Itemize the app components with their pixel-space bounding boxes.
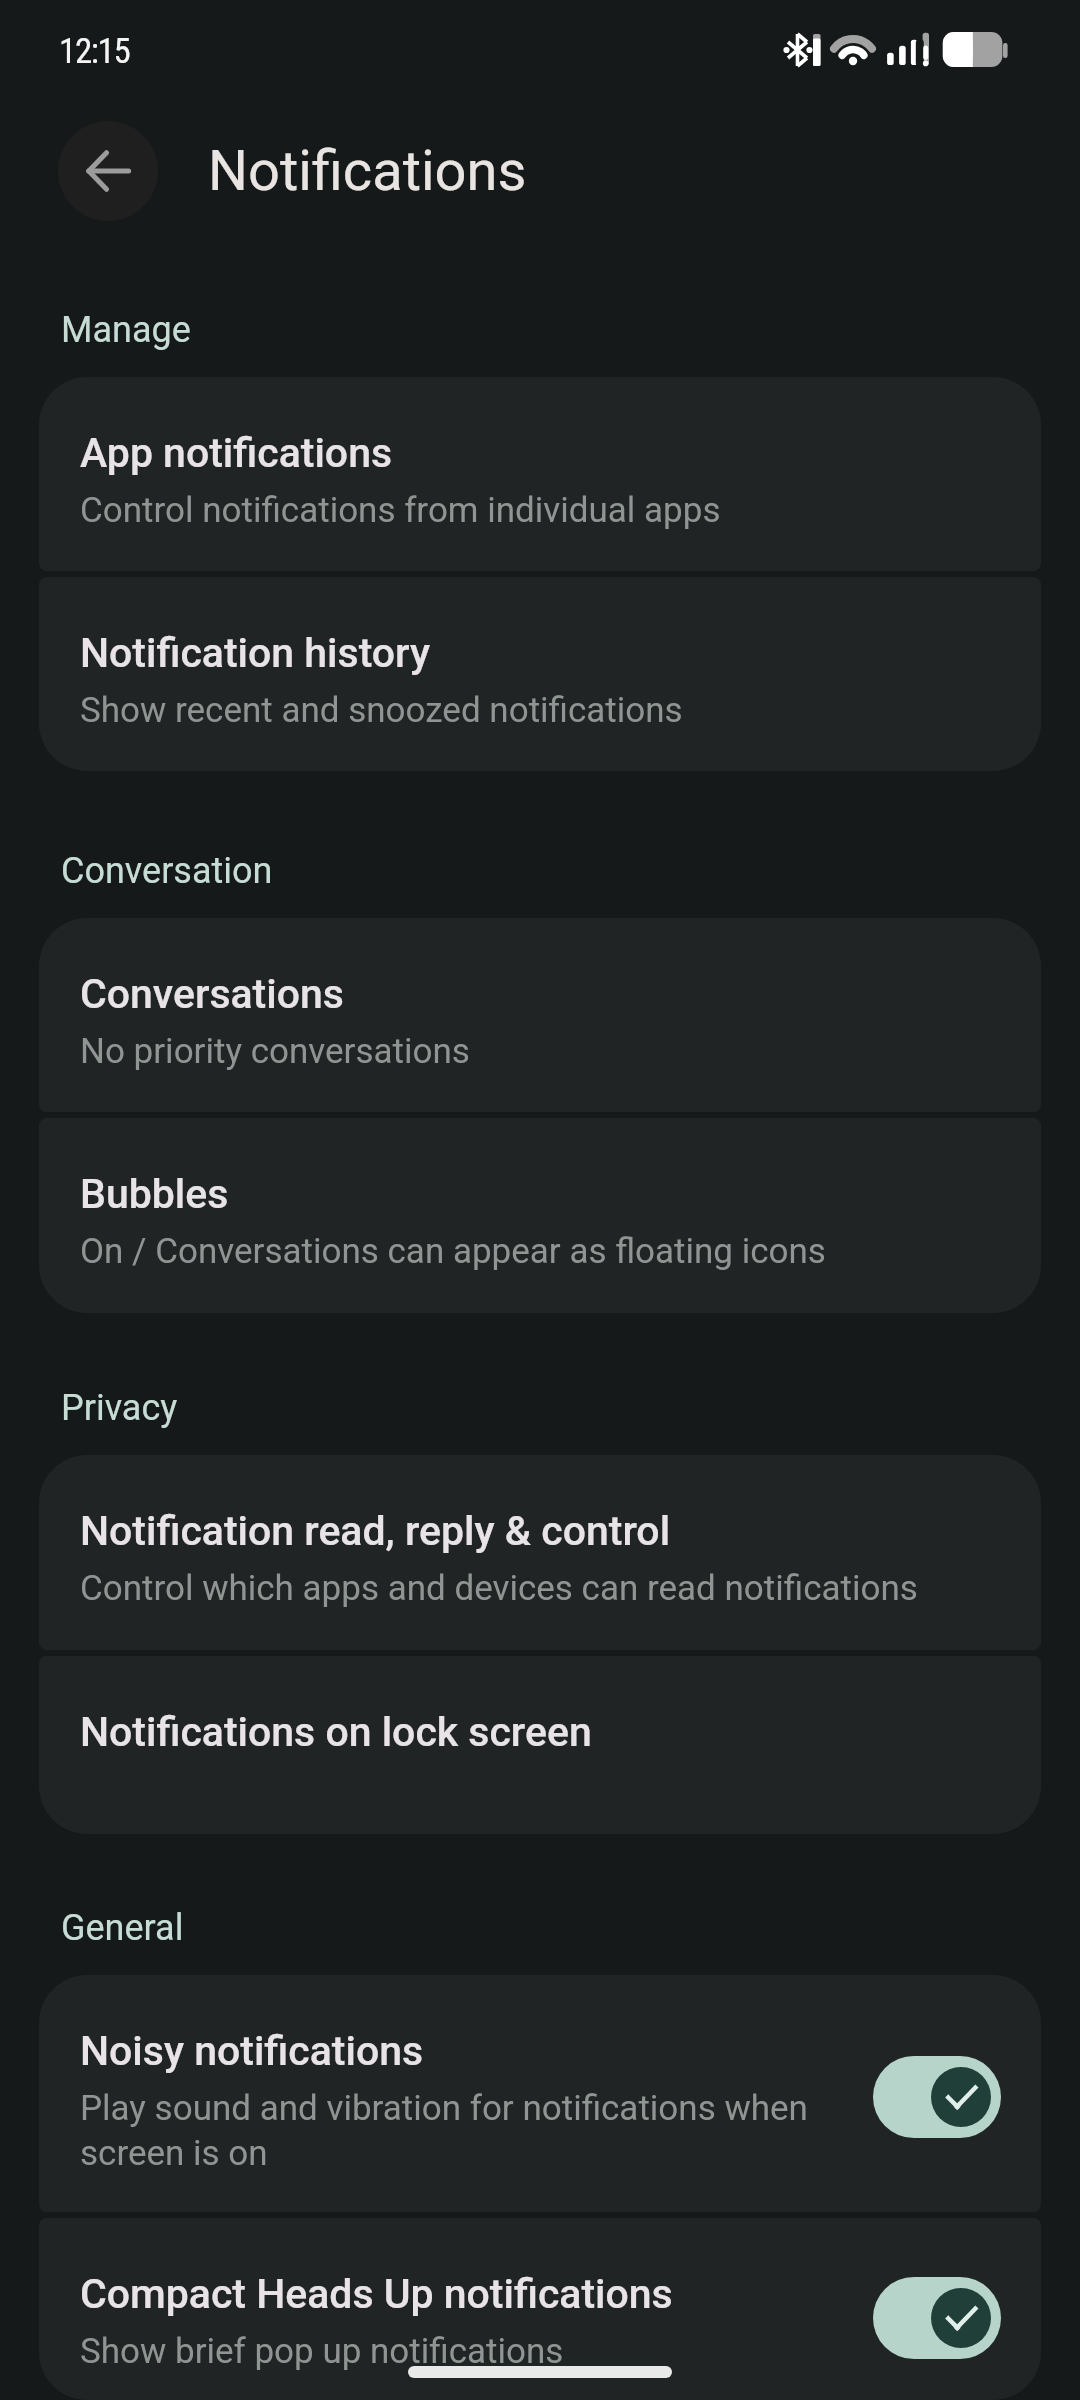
- staticText: Control notifications from individual ap…: [80, 490, 721, 531]
- staticText: Show brief pop up notifications: [80, 2331, 564, 2372]
- staticText: App notifications: [80, 429, 393, 477]
- button[interactable]: Toggle: [873, 2277, 1001, 2359]
- staticText: General: [61, 1907, 184, 1949]
- staticText: Conversation: [61, 850, 273, 892]
- staticText: Notification read, reply & control: [80, 1507, 671, 1555]
- staticText: Compact Heads Up notifications: [80, 2270, 673, 2318]
- staticText: Control which apps and devices can read …: [80, 1568, 918, 1609]
- staticText: Show recent and snoozed notifications: [80, 690, 683, 731]
- staticText: Bubbles: [80, 1170, 229, 1218]
- button[interactable]: Noisy notifications: [39, 1975, 1041, 2212]
- button[interactable]: Toggle: [873, 2056, 1001, 2138]
- button[interactable]: Notifications on lock screen: [39, 1656, 1041, 1834]
- staticText: Conversations: [80, 970, 344, 1018]
- button[interactable]: Bubbles: [39, 1118, 1041, 1313]
- staticText: Play sound and vibration for notificatio…: [80, 2088, 808, 2173]
- staticText: No priority conversations: [80, 1031, 470, 1072]
- staticText: Noisy notifications: [80, 2027, 424, 2075]
- staticText: Privacy: [61, 1387, 178, 1429]
- button[interactable]: Notification read, reply & control: [39, 1455, 1041, 1650]
- staticText: On / Conversations can appear as floatin…: [80, 1231, 826, 1272]
- staticText: Manage: [61, 309, 191, 351]
- staticText: Notifications on lock screen: [80, 1708, 592, 1756]
- button[interactable]: Notification history: [39, 577, 1041, 771]
- button[interactable]: Conversations: [39, 918, 1041, 1112]
- button[interactable]: Compact Heads Up notifications: [39, 2218, 1041, 2400]
- staticText: 12:15: [59, 31, 130, 72]
- staticText: Notifications: [208, 138, 527, 204]
- button[interactable]: App notifications: [39, 377, 1041, 571]
- button[interactable]: Back: [58, 121, 158, 221]
- staticText: Notification history: [80, 629, 431, 677]
